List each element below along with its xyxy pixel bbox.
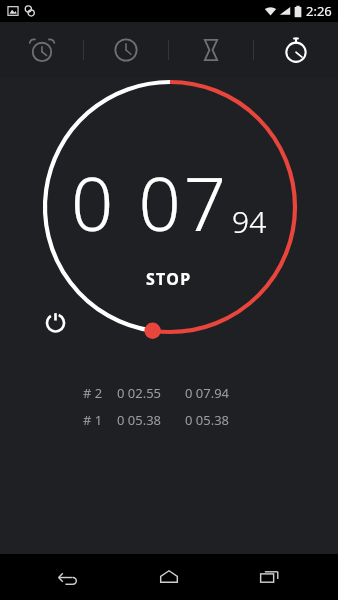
staticText: 0 07.94 [185, 384, 230, 402]
staticText: 0 05.38 [185, 411, 230, 429]
button[interactable]: Timer [169, 22, 253, 78]
staticText: 94 [232, 201, 267, 242]
button[interactable]: Alarm [0, 22, 83, 78]
staticText: 0 07 [71, 152, 229, 253]
button[interactable]: Stopwatch [254, 22, 338, 78]
button[interactable]: Reset [38, 305, 72, 339]
button[interactable]: Back [35, 554, 101, 600]
button[interactable]: # 1 [83, 411, 255, 429]
button[interactable]: # 2 [83, 384, 255, 402]
staticText: # 1 [83, 411, 103, 429]
button[interactable]: Clock [84, 22, 168, 78]
button[interactable]: STOP [128, 265, 210, 293]
button[interactable]: Recents [237, 554, 303, 600]
staticText: 2:26 [306, 2, 332, 20]
staticText: 0 02.55 [117, 384, 162, 402]
staticText: 0 05.38 [117, 411, 162, 429]
staticText: # 2 [83, 384, 103, 402]
button[interactable]: Home [136, 554, 202, 600]
staticText: STOP [146, 268, 192, 290]
